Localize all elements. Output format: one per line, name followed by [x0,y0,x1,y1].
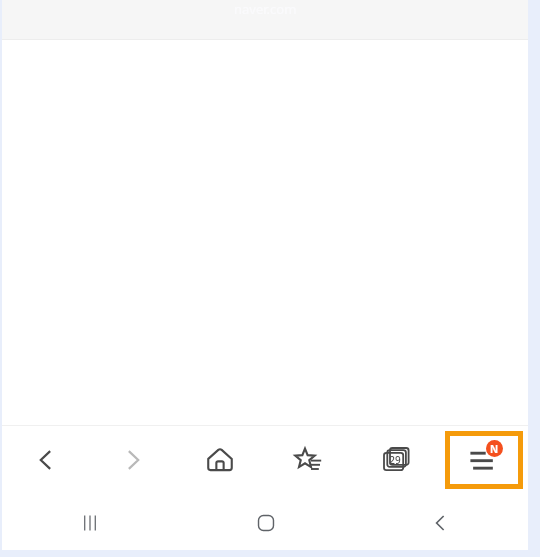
button[interactable]: Home [178,495,353,550]
button[interactable]: Back [2,425,89,495]
button[interactable]: Home [176,425,264,495]
button[interactable]: Back [353,495,528,550]
button[interactable]: Forward [89,425,176,495]
button[interactable]: Menu [450,436,518,484]
staticText: 29 [384,453,406,467]
button[interactable]: Recent apps [2,495,178,550]
button[interactable]: Tabs [352,425,440,495]
button[interactable]: Bookmarks [264,425,352,495]
staticText: N [490,442,499,456]
